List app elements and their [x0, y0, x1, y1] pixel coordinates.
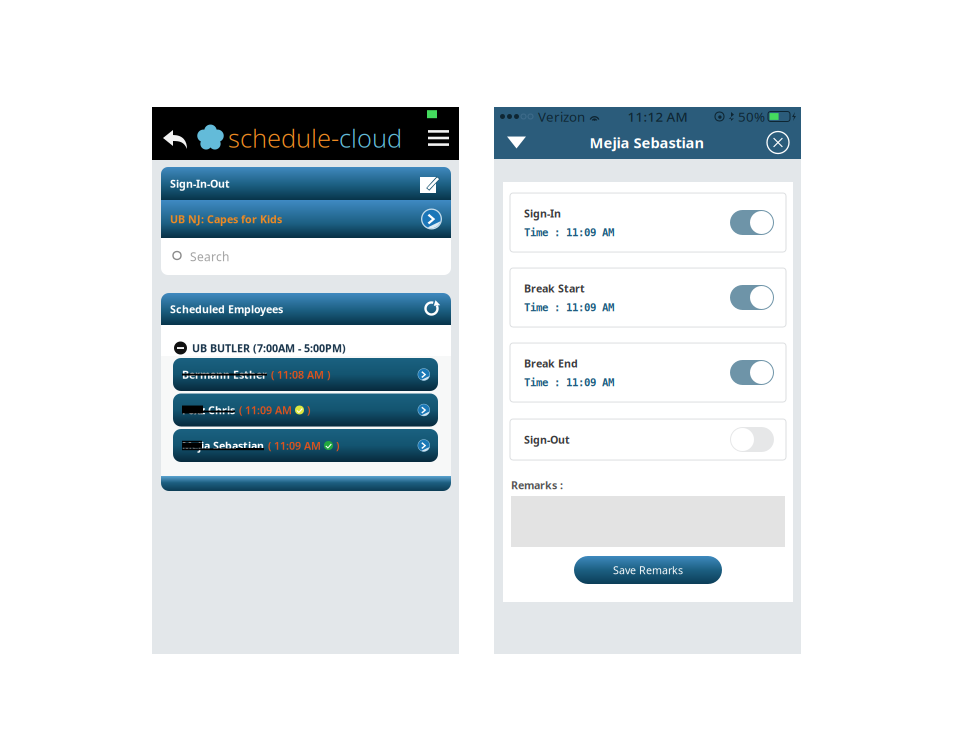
- staticText: Break End: [524, 356, 578, 371]
- staticText: Sign-In-Out: [170, 176, 230, 191]
- staticText: ( 11:08 AM ): [271, 367, 330, 382]
- staticText: UB NJ: Capes for Kids: [170, 212, 282, 226]
- staticText: Remarks :: [511, 478, 563, 492]
- staticText: ): [304, 403, 310, 417]
- staticText: Bermann Esther: [182, 367, 267, 382]
- button[interactable]: Break Start toggle: [730, 285, 774, 310]
- staticText: Sign-Out: [524, 432, 570, 447]
- staticText: Time : 11:09 AM: [524, 376, 614, 389]
- staticText: ( 11:09 AM: [239, 403, 292, 417]
- staticText: Verizon: [538, 108, 585, 125]
- button[interactable]: Sign-In toggle: [730, 210, 774, 235]
- staticText: Sign-In: [524, 206, 561, 221]
- staticText: 11:12 AM: [627, 108, 687, 125]
- staticText: ): [333, 438, 339, 453]
- button[interactable]: Save Remarks: [574, 556, 722, 584]
- staticText: Search: [190, 248, 229, 264]
- staticText: Mejia Sebastian: [589, 133, 704, 152]
- button[interactable]: Collapse: [499, 127, 534, 157]
- staticText: UB BUTLER (7:00AM - 5:00PM): [192, 341, 346, 355]
- button[interactable]: Break End toggle: [730, 360, 774, 385]
- staticText: ( 11:09 AM: [268, 438, 321, 453]
- staticText: 50%: [738, 108, 765, 125]
- button[interactable]: Close: [760, 126, 796, 158]
- staticText: Save Remarks: [613, 563, 683, 577]
- button[interactable]: Foxz Chris: [161, 393, 451, 426]
- staticText: Time : 11:09 AM: [524, 301, 614, 314]
- button[interactable]: Edit: [422, 173, 442, 193]
- button[interactable]: Back: [157, 127, 193, 149]
- staticText: Break Start: [524, 281, 585, 296]
- button[interactable]: Bermann Esther: [161, 358, 451, 391]
- staticText: Mejia Sebastian: [182, 438, 264, 453]
- staticText: Time : 11:09 AM: [524, 226, 614, 239]
- staticText: cloud: [339, 121, 402, 155]
- button[interactable]: Sign-Out toggle: [730, 427, 774, 452]
- staticText: schedule-: [228, 121, 339, 155]
- staticText: Scheduled Employees: [170, 302, 283, 316]
- button[interactable]: UB NJ: Capes for Kids: [161, 200, 451, 238]
- button[interactable]: Refresh: [422, 299, 442, 319]
- button[interactable]: Menu: [423, 129, 454, 146]
- button[interactable]: Mejia Sebastian: [161, 429, 451, 462]
- staticText: Foxz Chris: [182, 403, 235, 417]
